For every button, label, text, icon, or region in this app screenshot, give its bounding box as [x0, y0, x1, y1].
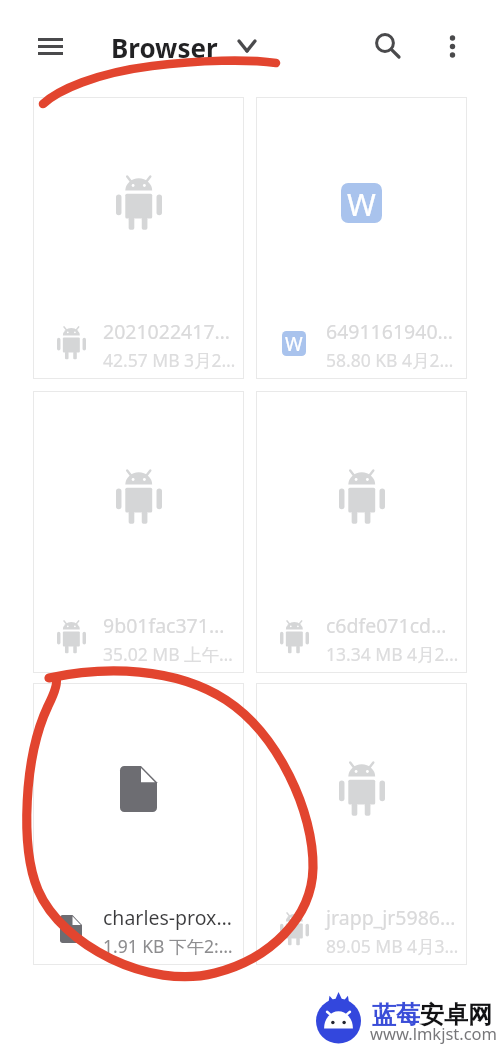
- staticText: 35.02 MB 上午…: [103, 642, 233, 666]
- button[interactable]: Navigation menu: [26, 27, 76, 67]
- staticText: W: [285, 331, 303, 356]
- button[interactable]: More options: [433, 23, 473, 63]
- button[interactable]: jrapp_jr5986…: [256, 683, 467, 965]
- button[interactable]: Change folder: [229, 31, 265, 61]
- staticText: 9b01fac371…: [103, 612, 225, 639]
- staticText: charles-prox…: [103, 904, 232, 931]
- button[interactable]: c6dfe071cd…: [256, 391, 467, 673]
- button[interactable]: 9b01fac371…: [33, 391, 244, 673]
- staticText: 89.05 MB 4月3…: [326, 934, 459, 958]
- staticText: W: [347, 183, 376, 223]
- staticText: jrapp_jr5986…: [326, 904, 456, 931]
- staticText: 1.91 KB 下午2:…: [103, 934, 233, 958]
- button[interactable]: Search: [363, 21, 407, 65]
- staticText: Browser: [111, 30, 218, 65]
- button[interactable]: 2021022417…: [33, 97, 244, 379]
- staticText: 安卓网: [420, 1000, 492, 1030]
- staticText: www.lmkjst.com: [370, 1022, 498, 1044]
- button[interactable]: W: [256, 97, 467, 379]
- button[interactable]: charles-prox…: [33, 683, 244, 965]
- staticText: 58.80 KB 4月2…: [326, 348, 454, 372]
- staticText: 6491161940…: [326, 318, 453, 345]
- staticText: 2021022417…: [103, 318, 230, 345]
- staticText: c6dfe071cd…: [326, 612, 447, 639]
- staticText: 蓝莓: [372, 1000, 420, 1030]
- staticText: 13.34 MB 4月2…: [326, 642, 459, 666]
- staticText: 42.57 MB 3月2…: [103, 348, 236, 372]
